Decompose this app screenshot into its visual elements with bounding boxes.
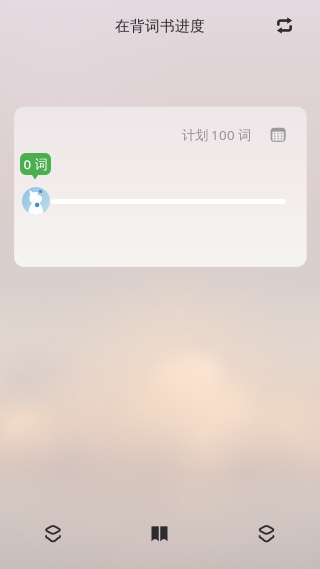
button[interactable]: 计划 100 词 (177, 124, 286, 146)
staticText: 在背词书进度 (115, 17, 205, 35)
button[interactable]: Word books (0, 509, 106, 558)
button[interactable]: Switch word book (264, 5, 305, 46)
button[interactable]: Profile (213, 509, 320, 558)
button[interactable]: Study (106, 509, 213, 558)
staticText: 0 词 (23, 155, 47, 173)
staticText: 计划 100 词 (182, 126, 251, 144)
